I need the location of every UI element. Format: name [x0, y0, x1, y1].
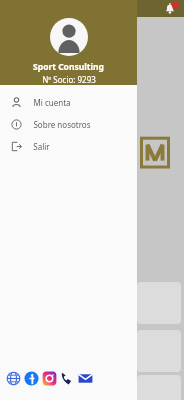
staticText: Sport Consulting: [33, 61, 104, 73]
staticText: Nº Socio: 9293: [42, 74, 96, 85]
button[interactable]: Facebook: [24, 371, 39, 386]
button[interactable]: Salir: [0, 135, 137, 157]
button[interactable]: Phone: [60, 371, 75, 386]
button[interactable]: Instagram: [42, 371, 57, 386]
staticText: Sobre nosotros: [33, 119, 91, 130]
button[interactable]: Website: [6, 371, 21, 386]
staticText: Salir: [33, 141, 50, 152]
button[interactable]: Sobre nosotros: [0, 113, 137, 135]
button[interactable]: Mi cuenta: [0, 91, 137, 113]
staticText: Mi cuenta: [33, 97, 71, 108]
button[interactable]: Notifications: [162, 0, 180, 17]
button[interactable]: Email: [78, 371, 93, 386]
